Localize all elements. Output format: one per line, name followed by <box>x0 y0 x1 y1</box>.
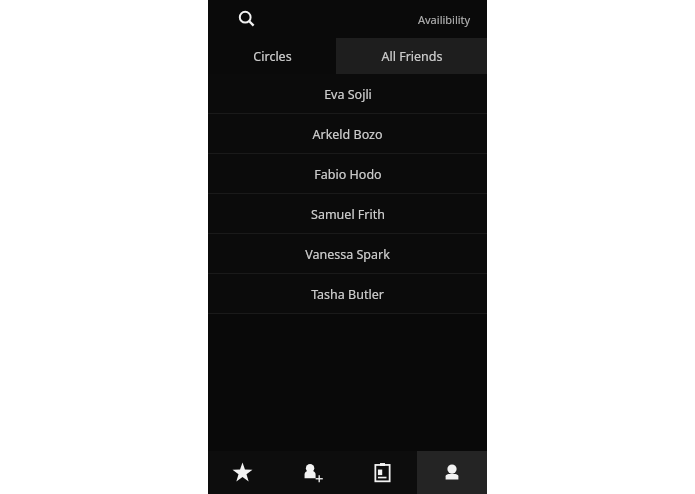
button[interactable]: Lists <box>347 451 417 494</box>
button[interactable]: Eva Sojli <box>208 74 487 114</box>
staticText: All Friends <box>381 48 443 65</box>
staticText: Tasha Butler <box>311 286 384 303</box>
button[interactable]: Favorites <box>208 451 277 494</box>
staticText: Vanessa Spark <box>305 246 390 263</box>
button[interactable]: Arkeld Bozo <box>208 114 487 154</box>
button[interactable]: Profile <box>417 451 487 494</box>
button[interactable]: Samuel Frith <box>208 194 487 234</box>
button[interactable]: Add friend <box>277 451 347 494</box>
staticText: Fabio Hodo <box>314 166 382 183</box>
staticText: Eva Sojli <box>324 86 372 103</box>
button[interactable]: Tasha Butler <box>208 274 487 314</box>
staticText: Arkeld Bozo <box>312 126 383 143</box>
staticText: Samuel Frith <box>311 206 385 223</box>
button[interactable]: Search <box>234 6 260 32</box>
staticText: Availibility <box>418 12 471 27</box>
button[interactable]: Circles <box>208 38 336 74</box>
button[interactable]: Fabio Hodo <box>208 154 487 194</box>
button[interactable]: All Friends <box>336 38 487 74</box>
button[interactable]: Vanessa Spark <box>208 234 487 274</box>
staticText: Circles <box>253 48 292 65</box>
button[interactable]: Availibility <box>414 8 475 31</box>
